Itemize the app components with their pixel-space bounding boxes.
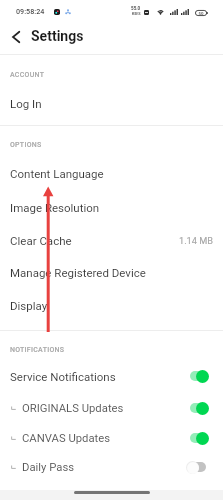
staticText: 50: [198, 11, 204, 16]
button[interactable]: Daily Pass: [0, 452, 223, 482]
staticText: KB/S: [132, 11, 141, 15]
button[interactable]: Off: [186, 460, 209, 474]
staticText: Service Notifications: [10, 370, 116, 383]
button[interactable]: On: [186, 431, 209, 445]
button[interactable]: Back: [2, 23, 30, 51]
staticText: Log In: [10, 97, 42, 110]
button[interactable]: Content Language: [0, 157, 223, 190]
staticText: ORIGINALS Updates: [22, 402, 124, 415]
staticText: 1.14 MB: [179, 235, 213, 246]
button[interactable]: ORIGINALS Updates: [0, 393, 223, 423]
staticText: Image Resolution: [10, 201, 100, 214]
button[interactable]: Service Notifications: [0, 361, 223, 391]
staticText: 55.0: [131, 6, 141, 11]
button[interactable]: On: [186, 369, 209, 383]
staticText: 09:58:24: [16, 7, 45, 15]
button[interactable]: Clear Cache: [0, 224, 223, 257]
button[interactable]: Log In: [0, 87, 223, 120]
button[interactable]: On: [186, 401, 209, 415]
staticText: Clear Cache: [10, 234, 72, 247]
staticText: OPTIONS: [10, 141, 42, 149]
staticText: ACCOUNT: [10, 71, 45, 79]
button[interactable]: Manage Registered Device: [0, 256, 223, 289]
staticText: CANVAS Updates: [22, 432, 111, 445]
button[interactable]: Image Resolution: [0, 191, 223, 224]
staticText: Manage Registered Device: [10, 266, 146, 279]
staticText: Settings: [31, 28, 84, 44]
staticText: Display: [10, 299, 48, 312]
staticText: NOTIFICATIONS: [10, 346, 65, 354]
staticText: Daily Pass: [22, 461, 75, 474]
staticText: Content Language: [10, 167, 104, 180]
button[interactable]: CANVAS Updates: [0, 423, 223, 453]
button[interactable]: Display: [0, 289, 223, 322]
